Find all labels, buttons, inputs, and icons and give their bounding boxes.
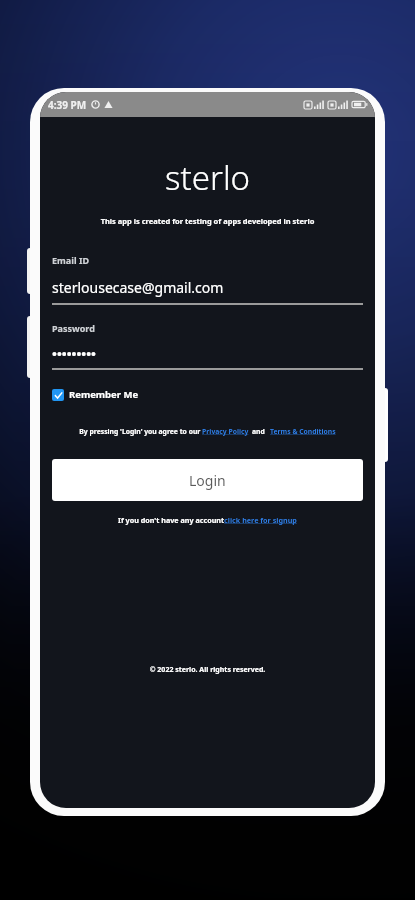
staticText: Password (52, 322, 95, 334)
button[interactable]: sterlousecase@gmail.com (52, 278, 224, 297)
button[interactable]: If you don't have any accountclick here … (40, 515, 375, 525)
staticText: © 2022 sterlo. All rights reserved. (40, 665, 375, 675)
button[interactable]: ••••••••• (52, 345, 96, 363)
staticText: Login (189, 471, 226, 490)
button[interactable]: By pressing 'Login' you agree to our Pri… (40, 427, 375, 436)
button[interactable]: Remember Me (52, 388, 139, 401)
staticText: Remember Me (69, 388, 139, 401)
staticText: Email ID (52, 254, 90, 266)
staticText: 4:39 PM (48, 98, 87, 112)
button[interactable]: Login (52, 459, 363, 501)
staticText: This app is created for testing of apps … (50, 216, 365, 226)
staticText: sterlo (40, 155, 375, 200)
